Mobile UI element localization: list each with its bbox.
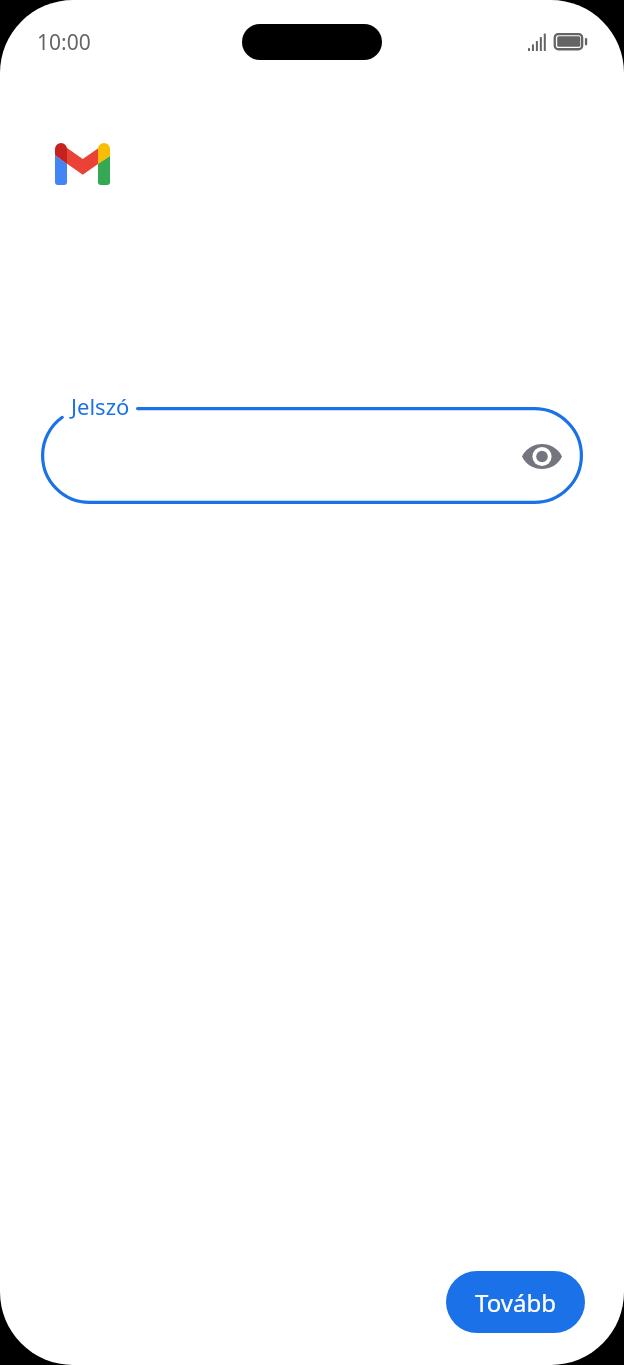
staticText: Tovább — [475, 1286, 556, 1319]
button[interactable]: Tovább — [446, 1271, 585, 1333]
staticText: 10:00 — [37, 28, 91, 57]
staticText: Jelszó — [71, 391, 130, 421]
other: Gmail — [55, 143, 110, 185]
button[interactable]: Jelszó — [41, 407, 583, 504]
button[interactable]: Jelszó megjelenítése — [514, 428, 570, 484]
